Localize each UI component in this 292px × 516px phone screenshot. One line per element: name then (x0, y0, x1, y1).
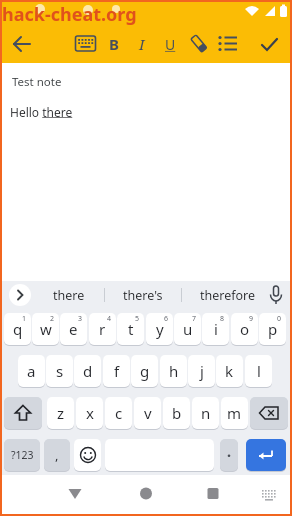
button[interactable]: , (44, 439, 70, 471)
button[interactable]: d (74, 355, 101, 387)
staticText: l (257, 361, 261, 381)
button[interactable]: k (216, 355, 243, 387)
button[interactable] (75, 35, 96, 53)
button[interactable]: p (259, 313, 286, 345)
staticText: r (99, 319, 106, 339)
staticText: Hello there (10, 104, 73, 120)
button[interactable]: s (46, 355, 73, 387)
button[interactable]: l (245, 355, 272, 387)
staticText: u (183, 319, 193, 339)
staticText: Test note (12, 74, 62, 90)
staticText: , (55, 446, 59, 464)
button[interactable]: there (36, 281, 102, 309)
staticText: 2 (50, 314, 55, 324)
button[interactable]: B (103, 32, 125, 56)
button[interactable]: there's (107, 281, 179, 309)
button[interactable]: j (188, 355, 215, 387)
staticText: x (86, 403, 94, 423)
button[interactable]: ?123 (4, 439, 40, 471)
button[interactable]: f (103, 355, 130, 387)
staticText: f (114, 361, 120, 381)
staticText: 3 (78, 314, 83, 324)
button[interactable] (200, 481, 226, 507)
button[interactable] (250, 397, 288, 429)
staticText: p (268, 319, 278, 339)
button[interactable]: h (160, 355, 187, 387)
button[interactable]: i (202, 313, 229, 345)
button[interactable] (246, 439, 286, 471)
button[interactable] (6, 28, 38, 60)
staticText: h (169, 361, 179, 381)
button[interactable] (62, 481, 88, 507)
staticText: c (115, 403, 123, 423)
staticText: n (201, 403, 211, 423)
button[interactable]: y (146, 313, 173, 345)
button[interactable]: c (105, 397, 132, 429)
button[interactable]: x (76, 397, 103, 429)
staticText: t (128, 319, 134, 339)
staticText: 4 (107, 314, 112, 324)
staticText: 6 (164, 314, 169, 324)
button[interactable] (9, 284, 31, 306)
staticText: 8 (220, 314, 225, 324)
staticText: e (69, 319, 78, 339)
staticText: 5 (135, 314, 140, 324)
staticText: b (172, 403, 182, 423)
staticText: B (109, 34, 119, 54)
staticText: therefore (200, 287, 256, 304)
button[interactable]: therefore (184, 281, 272, 309)
button[interactable] (258, 483, 280, 505)
staticText: I (139, 34, 145, 54)
button[interactable]: b (163, 397, 190, 429)
button[interactable]: t (117, 313, 144, 345)
staticText: z (57, 403, 65, 423)
button[interactable]: U (160, 32, 180, 56)
staticText: there's (123, 287, 163, 304)
staticText: s (56, 361, 64, 381)
staticText: 9 (249, 314, 254, 324)
staticText: hack-cheat.org (2, 2, 137, 27)
button[interactable] (264, 283, 288, 307)
button[interactable]: u (174, 313, 201, 345)
button[interactable]: v (134, 397, 161, 429)
staticText: d (83, 361, 93, 381)
staticText: j (200, 361, 204, 381)
button[interactable] (4, 397, 42, 429)
button[interactable]: g (131, 355, 158, 387)
staticText: o (240, 319, 250, 339)
button[interactable]: I (132, 32, 152, 56)
button[interactable]: z (47, 397, 74, 429)
staticText: g (140, 361, 150, 381)
staticText: y (156, 319, 164, 339)
button[interactable]: o (231, 313, 258, 345)
button[interactable]: r (89, 313, 116, 345)
staticText: 7 (192, 314, 197, 324)
button[interactable]: n (192, 397, 219, 429)
button[interactable]: a (18, 355, 45, 387)
button[interactable]: w (32, 313, 59, 345)
button[interactable] (189, 33, 209, 55)
button[interactable] (220, 439, 238, 471)
button[interactable]: q (4, 313, 31, 345)
button[interactable] (133, 481, 159, 507)
staticText: ?123 (11, 448, 34, 462)
staticText: U (165, 35, 176, 54)
button[interactable] (257, 32, 281, 56)
button[interactable]: e (60, 313, 87, 345)
staticText: there (53, 287, 85, 304)
staticText: 1 (22, 314, 27, 324)
staticText: k (225, 361, 234, 381)
staticText: q (13, 319, 23, 339)
staticText: 0 (277, 314, 282, 324)
staticText: a (27, 361, 36, 381)
staticText: m (227, 403, 242, 423)
staticText: i (214, 319, 218, 339)
staticText: v (144, 403, 152, 423)
button[interactable] (74, 439, 101, 471)
button[interactable] (218, 35, 238, 53)
staticText: w (40, 319, 52, 339)
button[interactable]: m (221, 397, 248, 429)
